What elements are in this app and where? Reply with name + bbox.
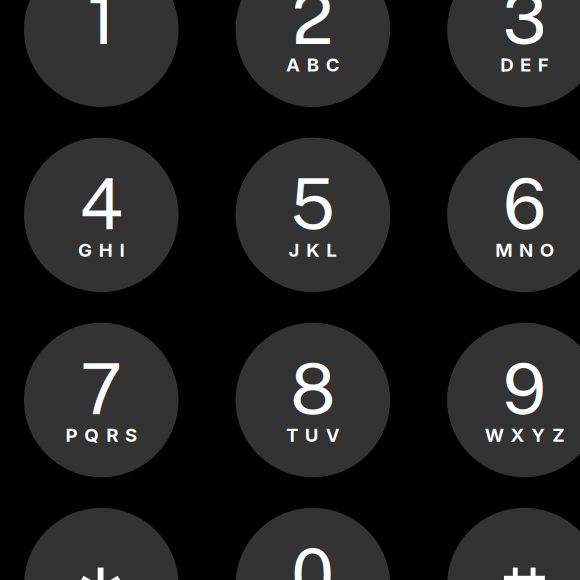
staticText: 3 bbox=[502, 0, 546, 60]
staticText: MNO bbox=[495, 239, 554, 261]
button[interactable]: 3 D E F bbox=[447, 0, 580, 107]
button[interactable]: 0 bbox=[236, 508, 390, 580]
button[interactable]: 1 bbox=[24, 0, 178, 107]
button[interactable]: Star bbox=[24, 508, 178, 580]
staticText: 5 bbox=[290, 163, 335, 245]
staticText: JKL bbox=[289, 239, 337, 261]
staticText: 9 bbox=[502, 348, 546, 430]
staticText: WXYZ bbox=[485, 424, 564, 446]
staticText: 6 bbox=[503, 163, 546, 245]
button[interactable]: 8 T U V bbox=[236, 323, 390, 477]
staticText: 0 bbox=[291, 533, 334, 580]
button[interactable]: 5 J K L bbox=[236, 138, 390, 292]
button[interactable]: 4 G H I bbox=[24, 138, 178, 292]
button[interactable]: 6 M N O bbox=[447, 138, 580, 292]
staticText: PQRS bbox=[66, 424, 137, 446]
staticText: 1 bbox=[87, 0, 115, 60]
staticText: 4 bbox=[79, 163, 123, 245]
button[interactable]: 9 W X Y Z bbox=[447, 323, 580, 477]
button[interactable]: Pound bbox=[447, 508, 580, 580]
button[interactable]: 2 A B C bbox=[236, 0, 390, 107]
staticText: ABC bbox=[286, 53, 340, 76]
staticText: 8 bbox=[290, 348, 335, 430]
staticText: GHI bbox=[78, 239, 125, 261]
staticText: 2 bbox=[292, 0, 334, 60]
staticText: TUV bbox=[286, 424, 340, 446]
button[interactable]: 7 P Q R S bbox=[24, 323, 178, 477]
staticText: 7 bbox=[80, 348, 122, 430]
staticText: DEF bbox=[500, 53, 549, 76]
